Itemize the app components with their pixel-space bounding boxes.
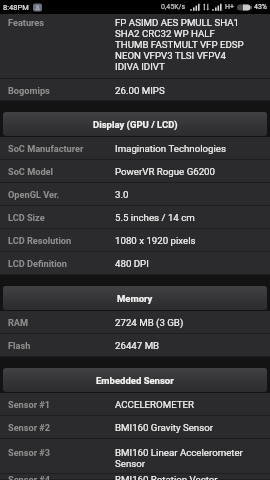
staticText: 5.5 inches / 14 cm	[115, 212, 195, 223]
staticText: Display (GPU / LCD)	[93, 119, 178, 130]
staticText: ACCELEROMETER	[115, 399, 195, 410]
button[interactable]: SoC Model	[0, 160, 270, 183]
staticText: Memory	[117, 293, 153, 304]
staticText: Sensor #4	[8, 474, 51, 480]
staticText: 480 DPI	[115, 258, 149, 269]
button[interactable]: Sensor #1	[0, 393, 270, 416]
staticText: Sensor #1	[8, 399, 51, 410]
staticText: FP ASIMD AES PMULL SHA1 SHA2 CRC32 WP HA…	[115, 17, 244, 72]
staticText: Flash	[8, 340, 31, 351]
staticText: LCD Size	[8, 212, 45, 223]
staticText: 26447 MB	[115, 340, 160, 351]
staticText: OpenGL Ver.	[8, 189, 60, 200]
staticText: 8:48PM	[3, 3, 29, 12]
staticText: 26.00 MIPS	[115, 85, 165, 96]
staticText: PowerVR Rogue G6200	[115, 166, 216, 177]
button[interactable]: Bogomips	[0, 79, 270, 101]
staticText: 1080 x 1920 pixels	[115, 235, 196, 246]
button[interactable]: Sensor #3	[0, 439, 270, 474]
staticText: H+	[225, 3, 234, 11]
staticText: 0,45K/s	[161, 3, 186, 11]
button[interactable]: SoC Manufacturer	[0, 137, 270, 160]
staticText: RAM	[8, 317, 29, 328]
staticText: LCD Resolution	[8, 235, 72, 246]
button[interactable]: LCD Resolution	[0, 229, 270, 252]
staticText: Embedded Sensor	[96, 375, 174, 386]
button[interactable]: LCD Definition	[0, 252, 270, 275]
staticText: BMI160 Gravity Sensor	[115, 422, 214, 433]
staticText: BMI160 Linear Accelerometer Sensor	[115, 447, 243, 469]
button[interactable]: Sensor #2	[0, 416, 270, 439]
button[interactable]: Display (GPU / LCD)	[3, 112, 267, 136]
staticText: 43%	[254, 3, 267, 11]
staticText: Sensor #2	[8, 422, 51, 433]
button[interactable]: Flash	[0, 334, 270, 357]
staticText: Bogomips	[8, 85, 50, 96]
button[interactable]: OpenGL Ver.	[0, 183, 270, 206]
staticText: SoC Manufacturer	[8, 143, 84, 154]
button[interactable]: RAM	[0, 311, 270, 334]
button[interactable]: LCD Size	[0, 206, 270, 229]
staticText: LCD Definition	[8, 258, 67, 269]
button[interactable]: Sensor #4	[0, 474, 270, 480]
button[interactable]: Features	[0, 14, 270, 79]
staticText: Sensor #3	[8, 447, 51, 458]
staticText: 2724 MB (3 GB)	[115, 317, 184, 328]
staticText: Features	[8, 17, 45, 28]
button[interactable]: Memory	[3, 286, 267, 310]
staticText: BMI160 Rotation Vector	[115, 474, 218, 480]
staticText: 3.0	[115, 189, 129, 200]
staticText: SoC Model	[8, 166, 53, 177]
button[interactable]: Embedded Sensor	[3, 368, 267, 392]
staticText: Imagination Technologies	[115, 143, 226, 154]
